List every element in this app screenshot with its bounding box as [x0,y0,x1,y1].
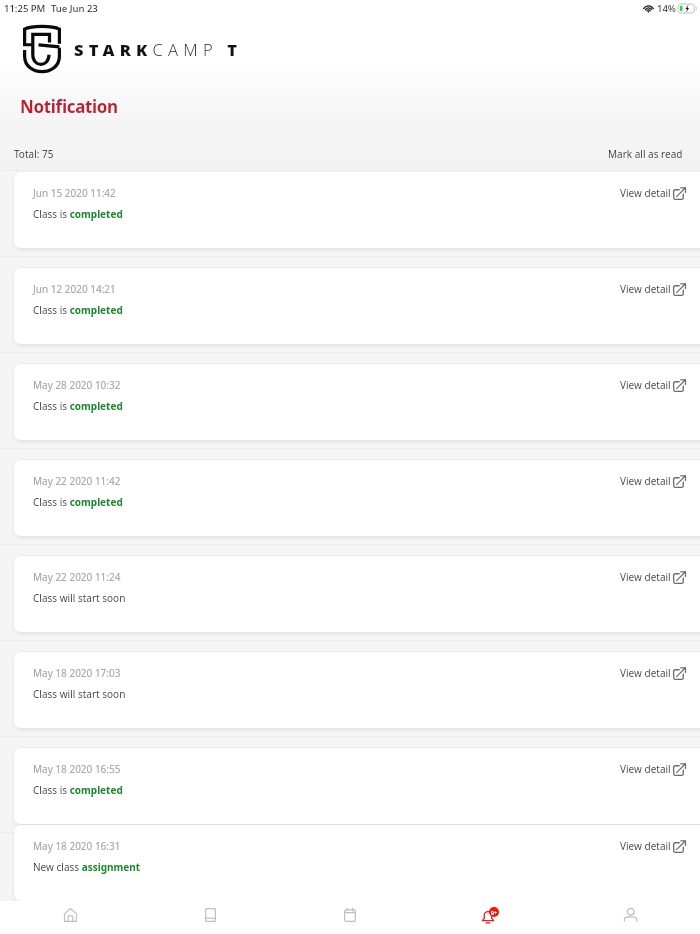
button[interactable]: View detail [620,186,686,200]
staticText: Total: 75 [14,147,54,161]
staticText: View detail [620,666,671,680]
staticText: Mark all as read [608,147,683,161]
staticText: Class is completed [33,783,123,797]
staticText: Jun 15 2020 11:42 [33,186,116,200]
button[interactable]: May 28 2020 10:32 [14,364,700,440]
button[interactable]: Calendar [280,901,420,934]
button[interactable]: Home [0,901,140,934]
staticText: View detail [620,474,671,488]
button[interactable]: Mark all as read [608,147,683,161]
button[interactable]: Notifications [420,901,560,934]
staticText: Class will start soon [33,687,126,701]
staticText: May 28 2020 10:32 [33,378,121,392]
staticText: View detail [620,378,671,392]
button[interactable]: View detail [620,570,686,584]
staticText: 9+ [491,909,497,916]
button[interactable]: View detail [620,474,686,488]
staticText: View detail [620,762,671,776]
button[interactable]: May 18 2020 16:55 [14,748,700,824]
staticText: 14% [657,2,676,15]
staticText: Class is completed [33,207,123,221]
staticText: STARKCAMP T [74,38,243,60]
button[interactable]: Jun 12 2020 14:21 [14,268,700,344]
staticText: View detail [620,282,671,296]
staticText: Class is completed [33,399,123,413]
staticText: Class is completed [33,495,123,509]
button[interactable]: View detail [620,666,686,680]
button[interactable]: Courses [140,901,280,934]
button[interactable]: View detail [620,378,686,392]
button[interactable]: May 22 2020 11:24 [14,556,700,632]
staticText: 11:25 PM [4,2,46,15]
staticText: May 18 2020 16:55 [33,762,121,776]
staticText: May 22 2020 11:42 [33,474,121,488]
staticText: Tue Jun 23 [51,2,98,15]
button[interactable]: May 18 2020 17:03 [14,652,700,728]
button[interactable]: View detail [620,839,686,853]
button[interactable]: Jun 15 2020 11:42 [14,172,700,248]
staticText: Class is completed [33,303,123,317]
button[interactable]: Profile [560,901,700,934]
staticText: May 18 2020 17:03 [33,666,121,680]
staticText: View detail [620,186,671,200]
staticText: New class assignment [33,860,141,874]
button[interactable]: View detail [620,282,686,296]
staticText: View detail [620,839,671,853]
staticText: Jun 12 2020 14:21 [33,282,116,296]
staticText: Class will start soon [33,591,126,605]
button[interactable]: May 22 2020 11:42 [14,460,700,536]
staticText: May 18 2020 16:31 [33,839,121,853]
staticText: Notification [20,95,118,118]
staticText: View detail [620,570,671,584]
staticText: May 22 2020 11:24 [33,570,121,584]
button[interactable]: May 18 2020 16:31 [14,825,700,901]
button[interactable]: View detail [620,762,686,776]
